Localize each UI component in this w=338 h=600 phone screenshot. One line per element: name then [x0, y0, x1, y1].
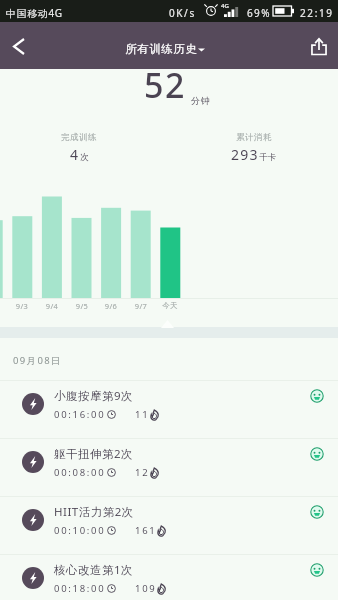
staticText: 9/6 — [96, 301, 126, 311]
staticText: 所有训练历史 — [125, 42, 197, 56]
staticText: 9/3 — [7, 301, 37, 311]
staticText: 小腹按摩第9次 — [54, 388, 134, 404]
staticText: 9/7 — [126, 301, 156, 311]
staticText: 躯干扭伸第2次 — [54, 446, 134, 462]
button[interactable]: 躯干扭伸第2次 — [0, 439, 338, 496]
staticText: 52 — [144, 62, 186, 108]
staticText: 累计消耗 — [236, 132, 272, 143]
staticText: 次 — [80, 152, 89, 163]
staticText: 293 — [231, 145, 259, 164]
staticText: 12 — [135, 466, 150, 479]
button[interactable]: 小腹按摩第9次 — [0, 381, 338, 438]
staticText: 09月08日 — [13, 354, 62, 367]
button[interactable]: 所有训练历史 — [122, 39, 208, 59]
staticText: 00:16:00 — [54, 408, 106, 421]
staticText: 00:08:00 — [54, 466, 106, 479]
button[interactable]: Back — [0, 27, 38, 65]
staticText: 分钟 — [191, 95, 211, 106]
staticText: 4 — [70, 145, 80, 164]
staticText: 161 — [135, 524, 157, 537]
button[interactable]: HIIT活力第2次 — [0, 497, 338, 554]
staticText: 完成训练 — [61, 132, 97, 143]
staticText: 00:10:00 — [54, 524, 106, 537]
staticText: 22:19 — [300, 6, 334, 20]
button[interactable]: 核心改造第1次 — [0, 555, 338, 600]
staticText: 4G — [221, 2, 229, 10]
staticText: 今天 — [155, 301, 185, 310]
staticText: 9/4 — [37, 301, 67, 311]
staticText: 核心改造第1次 — [54, 562, 134, 578]
staticText: 0K/s — [169, 6, 196, 20]
staticText: 11 — [135, 408, 150, 421]
button[interactable]: Share — [300, 27, 338, 65]
staticText: 9/5 — [67, 301, 97, 311]
staticText: HIIT活力第2次 — [54, 504, 134, 520]
staticText: 69% — [247, 6, 271, 20]
staticText: 中国移动4G — [6, 6, 63, 20]
staticText: 00:18:00 — [54, 582, 106, 595]
staticText: 千卡 — [259, 152, 277, 163]
staticText: 109 — [135, 582, 157, 595]
